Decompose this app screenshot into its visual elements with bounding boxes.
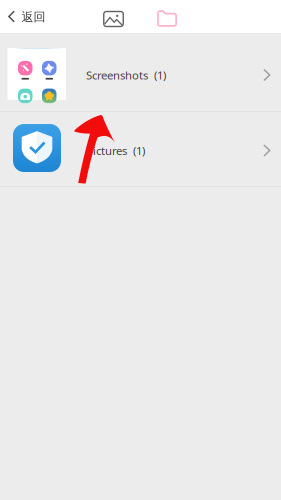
button[interactable]: 返回 (0, 0, 60, 33)
staticText: Pictures (86, 143, 127, 158)
staticText: (1) (154, 67, 166, 83)
button[interactable]: Pictures (0, 112, 281, 186)
staticText: (1) (133, 143, 145, 158)
button[interactable]: Gallery (91, 2, 135, 35)
staticText: 返回 (21, 10, 45, 24)
staticText: Screenshots (86, 67, 148, 83)
button[interactable]: Folders (145, 2, 189, 35)
button[interactable]: Screenshots (0, 34, 281, 111)
